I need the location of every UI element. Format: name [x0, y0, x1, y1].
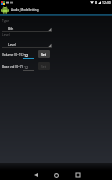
- button[interactable]: Set: [38, 50, 50, 58]
- staticText: Level: [8, 42, 16, 46]
- staticText: Level: [2, 33, 10, 37]
- button[interactable]: Audio_ModeSetting: [0, 5, 112, 15]
- staticText: 12: [24, 65, 29, 70]
- button[interactable]: Level: [2, 41, 52, 48]
- button[interactable]: Set: [38, 62, 50, 70]
- staticText: Volume (0~15): [2, 53, 24, 57]
- button[interactable]: Bth: [2, 25, 52, 32]
- button[interactable]: 12: [23, 51, 34, 59]
- staticText: Set: [41, 64, 47, 69]
- staticText: Type: [2, 19, 10, 23]
- staticText: Base vol (0~7): [2, 65, 23, 69]
- staticText: Audio_ModeSetting: [11, 8, 39, 12]
- button[interactable]: Recents: [68, 170, 87, 180]
- staticText: Set: [41, 52, 47, 57]
- button[interactable]: 12: [23, 63, 34, 71]
- button[interactable]: Home: [47, 170, 66, 180]
- staticText: 12: [24, 53, 29, 58]
- staticText: 12:30: [102, 0, 111, 5]
- button[interactable]: Back: [26, 170, 45, 180]
- staticText: Bth: [8, 26, 14, 30]
